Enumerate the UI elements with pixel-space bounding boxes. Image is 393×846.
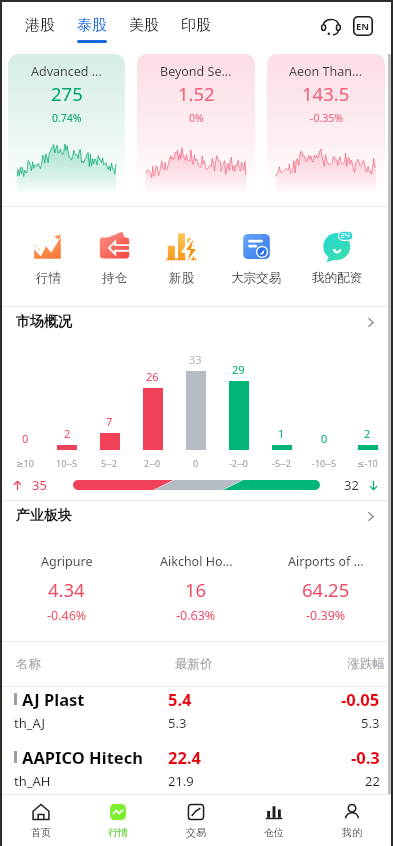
staticText: 0: [321, 431, 328, 446]
staticText: Advanced ...: [31, 63, 102, 80]
staticText: 0: [193, 457, 199, 469]
button[interactable]: Advanced ...: [8, 54, 125, 192]
staticText: 7: [106, 414, 113, 429]
button[interactable]: 美股: [118, 2, 170, 43]
staticText: 143.5: [302, 81, 350, 106]
staticText: 涨跌幅: [280, 656, 385, 672]
staticText: AJ Plast: [22, 688, 85, 710]
staticText: 印股: [181, 16, 211, 35]
staticText: 2: [364, 426, 371, 441]
staticText: 产业板块: [16, 507, 72, 525]
staticText: th_AJ: [14, 714, 46, 732]
staticText: 新股: [169, 270, 194, 286]
button[interactable]: 我的配资: [309, 229, 365, 286]
button[interactable]: 市场概况: [2, 307, 391, 337]
button[interactable]: Aeon Than...: [267, 54, 385, 192]
button[interactable]: 印股: [170, 2, 222, 43]
staticText: 5.3: [168, 714, 187, 732]
staticText: -10--5: [312, 457, 337, 469]
staticText: -0.63%: [176, 607, 216, 624]
button[interactable]: 产业板块: [2, 501, 391, 531]
staticText: 16: [185, 577, 207, 602]
staticText: -0.05: [341, 688, 380, 710]
button[interactable]: 交易: [157, 803, 235, 839]
staticText: 我的配资: [312, 270, 362, 286]
staticText: 64.25: [302, 577, 350, 602]
button[interactable]: 大宗交易: [228, 229, 284, 286]
button[interactable]: Customer service: [317, 12, 345, 40]
staticText: AAPICO Hitech: [22, 746, 143, 768]
staticText: 行情: [108, 826, 128, 839]
staticText: 5.3: [361, 714, 380, 732]
staticText: -0.46%: [47, 607, 87, 624]
button[interactable]: 持仓: [94, 229, 135, 286]
staticText: -0.35%: [310, 111, 343, 125]
staticText: 5--2: [101, 457, 118, 469]
staticText: 美股: [129, 16, 159, 35]
button[interactable]: 新股: [161, 229, 202, 286]
staticText: 35: [32, 476, 47, 494]
staticText: 10--5: [56, 457, 78, 469]
staticText: 市场概况: [16, 313, 72, 331]
staticText: 仓位: [264, 826, 284, 839]
staticText: -0.39%: [306, 607, 346, 624]
staticText: 33: [189, 352, 202, 367]
staticText: 2: [64, 426, 71, 441]
staticText: 交易: [186, 826, 206, 839]
staticText: 我的: [342, 826, 362, 839]
staticText: Beyond Se...: [160, 63, 232, 80]
button[interactable]: 行情: [28, 229, 69, 286]
button[interactable]: Agripure: [2, 553, 131, 624]
staticText: 港股: [25, 16, 55, 35]
staticText: 275: [51, 81, 83, 106]
staticText: Airports of ...: [288, 553, 364, 570]
button[interactable]: Airports of ...: [261, 553, 391, 624]
staticText: ≥10: [16, 457, 34, 469]
staticText: 1: [278, 426, 285, 441]
staticText: 泰股: [77, 16, 107, 35]
staticText: 4.34: [48, 577, 85, 602]
staticText: 最新价: [175, 656, 280, 672]
staticText: 29: [232, 362, 245, 377]
staticText: 行情: [36, 270, 61, 286]
staticText: 0: [22, 431, 29, 446]
staticText: 22: [365, 772, 380, 790]
staticText: 名称: [16, 656, 175, 672]
staticText: Aeon Than...: [289, 63, 363, 80]
staticText: -5--2: [272, 457, 291, 469]
staticText: 22.4: [168, 746, 201, 768]
staticText: EN: [356, 20, 370, 33]
staticText: -2--0: [229, 457, 248, 469]
button[interactable]: 首页: [2, 803, 79, 839]
staticText: 2--0: [144, 457, 161, 469]
button[interactable]: AJ Plast: [2, 687, 391, 745]
staticText: th_AH: [14, 772, 51, 790]
button[interactable]: Language EN: [349, 12, 377, 40]
staticText: 大宗交易: [231, 270, 281, 286]
staticText: 32: [344, 476, 359, 494]
staticText: ≤-10: [357, 457, 378, 469]
staticText: 持仓: [102, 270, 127, 286]
button[interactable]: 港股: [14, 2, 66, 43]
button[interactable]: 仓位: [235, 803, 313, 839]
staticText: Agripure: [41, 553, 93, 570]
staticText: 0.74%: [52, 111, 82, 125]
staticText: Aikchol Ho...: [160, 553, 233, 570]
staticText: 26: [146, 369, 159, 384]
staticText: 5.4: [168, 688, 192, 710]
button[interactable]: Beyond Se...: [137, 54, 255, 192]
button[interactable]: 我的: [313, 803, 391, 839]
button[interactable]: Aikchol Ho...: [131, 553, 261, 624]
staticText: 0%: [189, 111, 204, 125]
button[interactable]: 泰股: [66, 2, 118, 43]
staticText: 21.9: [168, 772, 194, 790]
staticText: -0.3: [351, 746, 380, 768]
button[interactable]: AAPICO Hitech: [2, 745, 391, 794]
button[interactable]: 行情: [79, 803, 157, 839]
staticText: 1.52: [178, 81, 215, 106]
staticText: 首页: [31, 826, 51, 839]
